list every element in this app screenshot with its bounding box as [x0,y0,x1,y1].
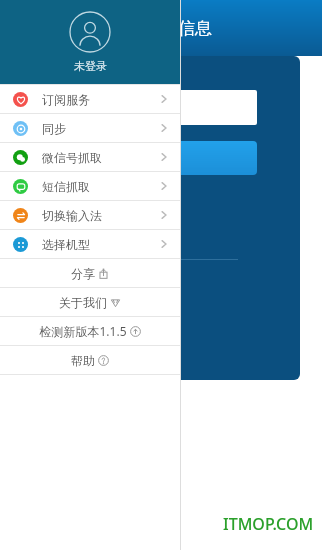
button[interactable] [42,90,257,125]
staticText: 分享 [71,266,95,281]
staticText: 帮助 [71,353,95,368]
button[interactable]: 微信号抓取 [0,143,180,171]
button[interactable]: 已连接 [102,229,154,243]
button[interactable]: 未登录 [0,0,180,84]
button[interactable]: 检测新版本1.1.5 [0,317,180,345]
button[interactable]: 短信抓取 [0,172,180,200]
staticText: ITMOP.COM [223,513,314,535]
button[interactable]: 选择机型 [0,230,180,258]
staticText: 短信抓取 [42,179,90,194]
staticText: 切换输入法 [42,208,102,223]
staticText: 输入法选择 [102,328,152,341]
button[interactable]: 帮助 [0,346,180,374]
staticText: 微信号抓取 [42,150,102,165]
staticText: 信息 [178,18,212,39]
button[interactable]: 分享 [0,259,180,287]
staticText: 同步 [42,121,66,136]
staticText: 订阅服务 [42,92,90,107]
button[interactable]: 订阅服务 [0,85,180,113]
staticText: 关于我们 [59,295,107,310]
staticText: 元 [42,194,54,209]
staticText: 检测新版本1.1.5 [39,323,127,339]
button[interactable]: 关于我们 [0,288,180,316]
button[interactable]: 切换输入法 [0,201,180,229]
staticText: 未登录 [74,59,107,73]
staticText: 选择机型 [42,237,90,252]
button[interactable]: 充值 [42,141,257,175]
button[interactable]: 同步 [0,114,180,142]
button[interactable]: 输入法选择 [102,292,152,341]
staticText: 充值 [136,149,164,167]
staticText: 已连接 [121,229,154,243]
